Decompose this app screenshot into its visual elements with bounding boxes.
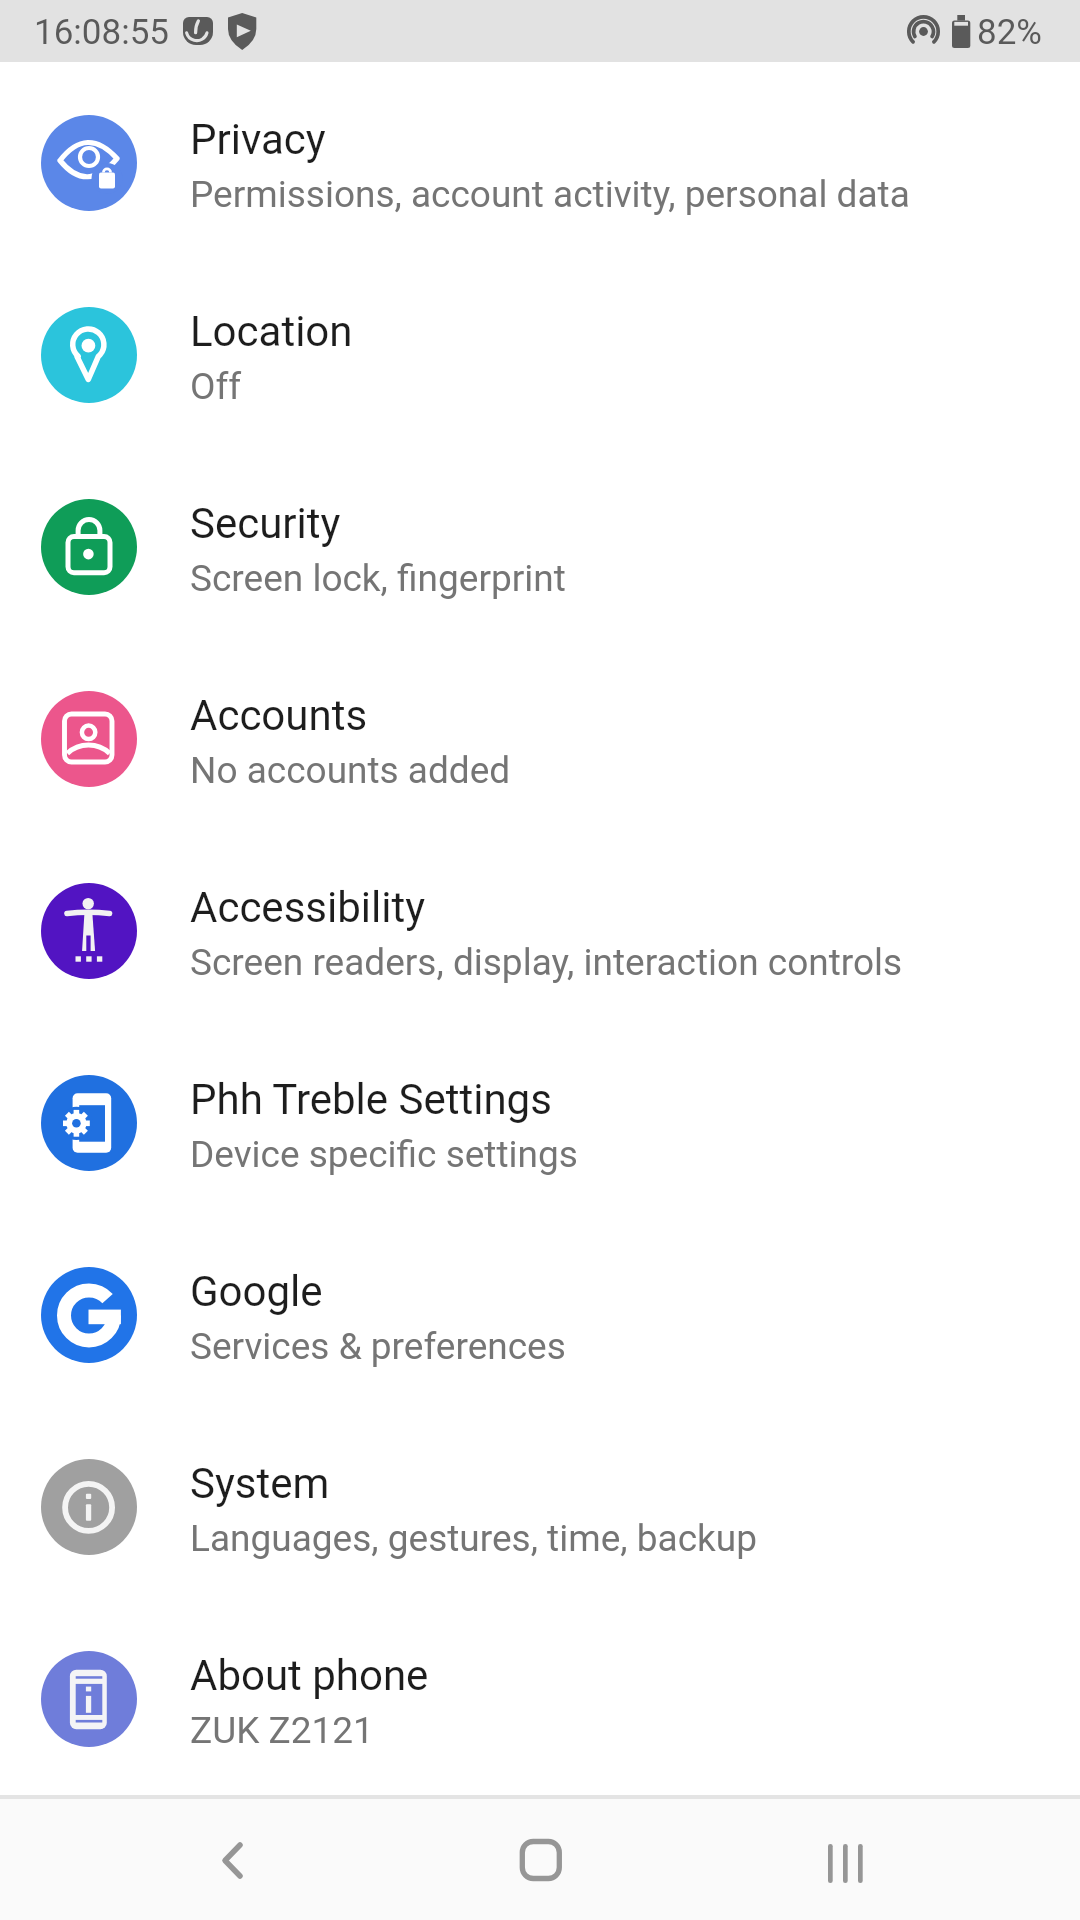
button[interactable]: Privacy bbox=[0, 67, 1080, 259]
staticText: 16:08:55 bbox=[34, 12, 169, 53]
button[interactable]: System bbox=[0, 1411, 1080, 1603]
staticText: Off bbox=[190, 365, 242, 408]
staticText: ZUK Z2121 bbox=[190, 1709, 374, 1752]
staticText: Screen readers, display, interaction con… bbox=[190, 941, 903, 984]
button[interactable] bbox=[720, 1799, 1080, 1920]
staticText: System bbox=[190, 1459, 330, 1508]
button[interactable]: About phone bbox=[0, 1603, 1080, 1795]
button[interactable]: Accounts bbox=[0, 643, 1080, 835]
staticText: No accounts added bbox=[190, 749, 511, 792]
staticText: Permissions, account activity, personal … bbox=[190, 173, 910, 216]
staticText: Accessibility bbox=[190, 883, 426, 932]
button[interactable] bbox=[0, 1799, 360, 1920]
staticText: Services & preferences bbox=[190, 1325, 566, 1368]
staticText: 82% bbox=[977, 12, 1042, 53]
button[interactable]: Security bbox=[0, 451, 1080, 643]
staticText: Accounts bbox=[190, 691, 368, 740]
staticText: Location bbox=[190, 307, 353, 356]
button[interactable] bbox=[360, 1799, 720, 1920]
button[interactable]: Location bbox=[0, 259, 1080, 451]
button[interactable]: Accessibility bbox=[0, 835, 1080, 1027]
staticText: Security bbox=[190, 499, 341, 548]
button[interactable]: Google bbox=[0, 1219, 1080, 1411]
button[interactable]: Phh Treble Settings bbox=[0, 1027, 1080, 1219]
staticText: Privacy bbox=[190, 115, 326, 164]
staticText: Screen lock, fingerprint bbox=[190, 557, 566, 600]
staticText: Phh Treble Settings bbox=[190, 1075, 552, 1124]
staticText: Languages, gestures, time, backup bbox=[190, 1517, 757, 1560]
staticText: Device specific settings bbox=[190, 1133, 578, 1176]
staticText: About phone bbox=[190, 1651, 429, 1700]
staticText: Google bbox=[190, 1267, 323, 1316]
